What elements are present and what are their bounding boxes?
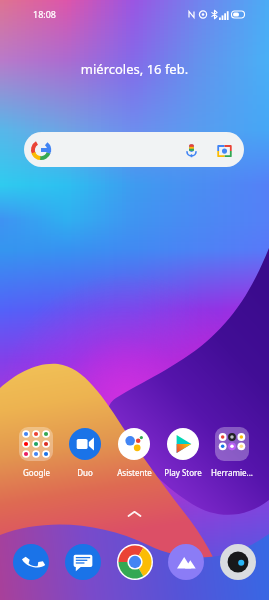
- button[interactable]: Teléfono: [12, 543, 50, 581]
- staticText: miércoles, 16 feb.: [0, 60, 269, 78]
- button[interactable]: Fotos: [167, 543, 205, 581]
- button[interactable]: Chrome: [116, 543, 154, 581]
- staticText: Google: [23, 467, 50, 478]
- button[interactable]: Abrir cajón de aplicaciones: [0, 509, 269, 519]
- button[interactable]: Mensajes: [64, 543, 102, 581]
- button[interactable]: Google: [10, 426, 62, 478]
- button[interactable]: Herramie...: [206, 426, 258, 478]
- button[interactable]: Cámara: [219, 543, 257, 581]
- staticText: Play Store: [164, 467, 202, 478]
- button[interactable]: Duo: [59, 426, 111, 478]
- staticText: 18:08: [33, 8, 57, 20]
- staticText: Herramie...: [211, 467, 253, 478]
- staticText: Duo: [77, 467, 93, 478]
- button[interactable]: Buscar: [24, 132, 244, 167]
- button[interactable]: Asistente: [108, 426, 160, 478]
- button[interactable]: Play Store: [157, 426, 209, 478]
- staticText: Asistente: [117, 467, 152, 478]
